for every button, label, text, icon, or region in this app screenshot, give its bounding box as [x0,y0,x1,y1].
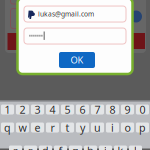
staticText: 9 [124,102,130,117]
button[interactable]: 2 [16,104,29,114]
staticText: u [94,120,101,135]
button[interactable]: 8 [106,104,119,114]
button[interactable]: l [129,145,142,150]
button[interactable]: w [16,122,29,132]
button[interactable]: u [91,122,104,132]
staticText: d [42,143,49,150]
staticText: q [4,120,11,135]
button[interactable]: j [99,145,112,150]
button[interactable]: 9 [121,104,134,114]
staticText: f [58,143,62,150]
staticText: 7 [94,102,100,117]
staticText: e [34,120,40,135]
staticText: 1 [4,102,10,117]
staticText: j [104,143,107,150]
button[interactable]: o [121,122,134,132]
button[interactable]: 7 [91,104,104,114]
button[interactable]: i [106,122,119,132]
button[interactable]: a [9,145,22,150]
staticText: r [50,120,54,135]
staticText: y [80,120,85,135]
button[interactable]: g [69,145,82,150]
button[interactable]: h [84,145,97,150]
staticText: 3 [34,102,40,117]
staticText: i [111,120,114,135]
button[interactable]: 1 [1,104,14,114]
button[interactable]: e [31,122,44,132]
button[interactable]: s [24,145,37,150]
button[interactable]: 4 [46,104,59,114]
staticText: s [28,143,33,150]
button[interactable]: y [76,122,89,132]
staticText: g [72,143,79,150]
button[interactable]: OK [59,52,95,68]
button[interactable]: q [1,122,14,132]
staticText: 5 [64,102,70,117]
staticText: 8 [109,102,115,117]
button[interactable]: k [114,145,127,150]
staticText: lukas@gmail.com [38,10,94,18]
button[interactable]: 6 [76,104,89,114]
staticText: l [134,143,137,150]
button[interactable]: r [46,122,59,132]
staticText: k [117,143,123,150]
staticText: h [87,143,94,150]
button[interactable]: 3 [31,104,44,114]
staticText: w [18,120,26,135]
staticText: a [12,143,18,150]
staticText: p [139,120,146,135]
button[interactable]: p [136,122,149,132]
staticText: 2 [19,102,25,117]
button[interactable]: d [39,145,52,150]
staticText: t [65,120,69,135]
staticText: 4 [49,102,55,117]
staticText: OK [70,54,83,66]
button[interactable]: t [61,122,74,132]
staticText: 6 [79,102,85,117]
staticText: 0 [139,102,145,117]
button[interactable]: 0 [136,104,149,114]
button[interactable]: 5 [61,104,74,114]
staticText: o [124,120,130,135]
button[interactable]: f [54,145,67,150]
